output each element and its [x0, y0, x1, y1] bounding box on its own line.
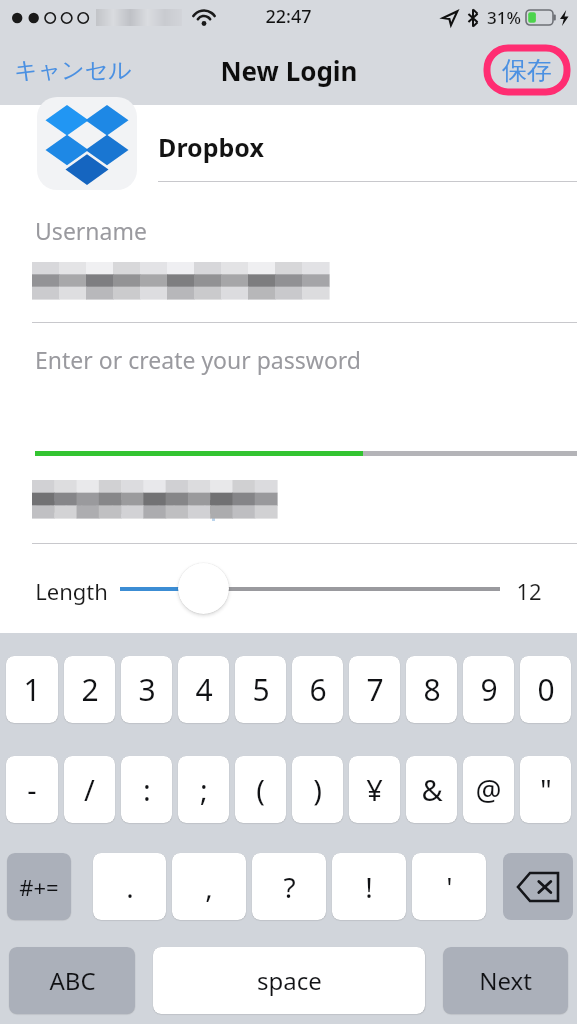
staticText: space	[257, 964, 322, 997]
staticText: 1	[23, 669, 41, 710]
staticText: 2	[81, 669, 99, 710]
staticText: Enter or create your password	[35, 344, 361, 375]
button[interactable]: 2	[64, 656, 115, 723]
button[interactable]: 0	[520, 656, 571, 723]
button[interactable]: #+=	[7, 853, 71, 920]
button[interactable]: -	[6, 756, 58, 823]
button[interactable]: :	[121, 756, 172, 823]
staticText: 31%	[487, 6, 521, 29]
button[interactable]: 6	[292, 656, 343, 723]
button[interactable]: "	[520, 756, 571, 823]
staticText: ?	[283, 868, 296, 906]
button[interactable]	[37, 97, 137, 190]
staticText: !	[365, 868, 373, 906]
staticText: 7	[366, 669, 384, 710]
staticText: &	[421, 770, 443, 809]
staticText: ¥	[366, 770, 383, 809]
staticText: '	[446, 868, 453, 906]
button[interactable]: ;	[178, 756, 229, 823]
staticText: Username	[35, 215, 147, 246]
staticText: #+=	[19, 872, 59, 902]
staticText: 22:47	[265, 4, 312, 29]
staticText: Length	[35, 576, 108, 606]
staticText: 3	[138, 669, 156, 710]
button[interactable]: 5	[235, 656, 286, 723]
staticText: /	[84, 770, 95, 809]
button[interactable]	[178, 563, 229, 614]
staticText: New Login	[220, 53, 358, 88]
staticText: 0	[537, 669, 555, 710]
button[interactable]: @	[463, 756, 514, 823]
button[interactable]: )	[292, 756, 343, 823]
button[interactable]: &	[406, 756, 457, 823]
staticText: 8	[423, 669, 441, 710]
button[interactable]: 8	[406, 656, 457, 723]
staticText: "	[540, 770, 552, 809]
staticText: キャンセル	[14, 56, 132, 85]
button[interactable]: !	[332, 853, 406, 920]
staticText: .	[126, 868, 134, 906]
staticText: ABC	[49, 964, 96, 997]
button[interactable]: 9	[463, 656, 514, 723]
button[interactable]: 3	[121, 656, 172, 723]
staticText: ;	[200, 770, 208, 809]
button[interactable]: (	[235, 756, 286, 823]
staticText: 6	[309, 669, 327, 710]
button[interactable]: .	[93, 853, 166, 920]
button[interactable]: ,	[172, 853, 246, 920]
button[interactable]: /	[64, 756, 115, 823]
staticText: @	[475, 770, 502, 809]
button[interactable]: キャンセル	[0, 46, 146, 95]
staticText: :	[143, 770, 151, 809]
staticText: 12	[516, 576, 542, 606]
staticText: 9	[480, 669, 498, 710]
staticText: 4	[195, 669, 213, 710]
staticText: ,	[205, 868, 213, 906]
button[interactable]: 保存	[485, 46, 569, 94]
button[interactable]: Next	[443, 947, 568, 1014]
button[interactable]: ¥	[349, 756, 400, 823]
button[interactable]: space	[153, 947, 425, 1014]
staticText: (	[256, 770, 265, 809]
staticText: 保存	[502, 55, 552, 86]
button[interactable]: ABC	[9, 947, 135, 1014]
button[interactable]: 1	[6, 656, 58, 723]
staticText: Dropbox	[158, 130, 264, 164]
button[interactable]: 4	[178, 656, 229, 723]
staticText: 5	[252, 669, 270, 710]
staticText: )	[313, 770, 322, 809]
staticText: -	[27, 770, 37, 809]
button[interactable]: Delete	[503, 853, 573, 920]
button[interactable]: ?	[252, 853, 326, 920]
staticText: Next	[479, 964, 532, 997]
button[interactable]: 7	[349, 656, 400, 723]
button[interactable]: '	[412, 853, 486, 920]
